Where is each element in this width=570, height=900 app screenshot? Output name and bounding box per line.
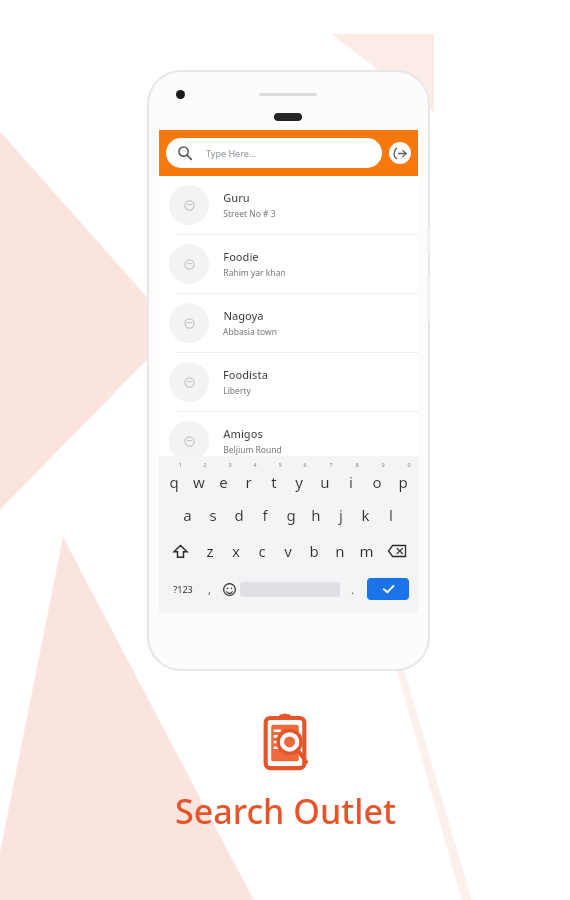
staticText: Beljium Round — [223, 444, 282, 456]
staticText: 3 — [228, 461, 232, 468]
button[interactable]: ?123 — [165, 569, 200, 609]
button[interactable]: Foodista — [159, 353, 418, 411]
button[interactable]: d — [226, 497, 252, 533]
button[interactable]: 3 — [211, 461, 236, 497]
button[interactable]: g — [278, 497, 303, 533]
button[interactable]: b — [301, 533, 327, 569]
button[interactable]: a — [174, 497, 200, 533]
button[interactable]: , — [200, 569, 219, 609]
staticText: s — [209, 505, 217, 525]
staticText: ?123 — [173, 583, 193, 595]
button[interactable]: Shift — [163, 533, 197, 569]
staticText: t — [271, 472, 277, 492]
button[interactable]: v — [275, 533, 301, 569]
staticText: Foodista — [223, 367, 268, 382]
button[interactable]: 6 — [286, 461, 312, 497]
button[interactable]: 1 — [161, 461, 186, 497]
button[interactable]: Nagoya — [159, 294, 418, 352]
button[interactable]: h — [303, 497, 328, 533]
staticText: 1 — [178, 461, 182, 468]
button[interactable]: x — [223, 533, 249, 569]
button[interactable]: m — [353, 533, 379, 569]
staticText: 5 — [278, 461, 282, 468]
button[interactable]: Type Here... — [166, 138, 382, 168]
staticText: r — [245, 472, 252, 492]
button[interactable]: 7 — [312, 461, 338, 497]
staticText: 0 — [407, 461, 411, 468]
staticText: g — [286, 505, 296, 525]
staticText: 8 — [355, 461, 359, 468]
staticText: k — [361, 505, 370, 525]
button[interactable]: Backspace — [379, 533, 414, 569]
button[interactable]: 4 — [236, 461, 261, 497]
button[interactable]: f — [252, 497, 278, 533]
staticText: Rahim yar khan — [223, 267, 286, 279]
staticText: Abbasia town — [223, 326, 277, 338]
staticText: c — [258, 541, 266, 561]
staticText: 2 — [203, 461, 207, 468]
staticText: Nagoya — [223, 308, 264, 323]
staticText: 6 — [303, 461, 307, 468]
button[interactable]: Enter — [367, 578, 409, 600]
staticText: Guru — [223, 190, 250, 205]
button[interactable]: k — [353, 497, 378, 533]
button[interactable]: Amigos — [159, 412, 418, 470]
staticText: , — [208, 582, 211, 597]
button[interactable]: c — [249, 533, 275, 569]
button[interactable]: l — [378, 497, 403, 533]
button[interactable]: 2 — [186, 461, 211, 497]
staticText: w — [193, 472, 205, 492]
button[interactable]: Guru — [159, 176, 418, 234]
staticText: x — [232, 541, 240, 561]
staticText: . — [351, 582, 354, 597]
button[interactable]: Cafe Zouk — [159, 471, 418, 529]
staticText: 9 — [381, 461, 385, 468]
staticText: o — [372, 472, 382, 492]
staticText: 4 — [253, 461, 257, 468]
staticText: Amigos — [223, 426, 263, 441]
button[interactable]: 9 — [364, 461, 390, 497]
staticText: Street No # 3 — [223, 208, 276, 220]
button[interactable]: s — [200, 497, 226, 533]
staticText: m — [359, 541, 374, 561]
staticText: z — [206, 541, 214, 561]
staticText: u — [320, 472, 330, 492]
button[interactable]: 5 — [261, 461, 286, 497]
staticText: h — [311, 505, 321, 525]
button[interactable]: j — [328, 497, 353, 533]
staticText: Cafe Zouk — [223, 485, 276, 500]
staticText: Main Boulevard — [223, 503, 286, 515]
staticText: i — [349, 472, 353, 492]
button[interactable]: Logout — [389, 142, 411, 164]
button[interactable]: 8 — [338, 461, 364, 497]
staticText: Foodie — [223, 249, 259, 264]
staticText: Search Outlet — [175, 788, 396, 834]
staticText: Type Here... — [206, 147, 256, 159]
staticText: f — [262, 505, 268, 525]
button[interactable]: n — [327, 533, 353, 569]
staticText: a — [183, 505, 192, 525]
staticText: y — [295, 472, 303, 492]
staticText: b — [309, 541, 319, 561]
button[interactable]: . — [340, 569, 364, 609]
staticText: d — [234, 505, 244, 525]
button[interactable]: 0 — [390, 461, 416, 497]
staticText: l — [389, 505, 393, 525]
staticText: v — [284, 541, 292, 561]
staticText: 7 — [329, 461, 333, 468]
staticText: q — [169, 472, 179, 492]
staticText: p — [398, 472, 408, 492]
button[interactable]: Foodie — [159, 235, 418, 293]
staticText: e — [219, 472, 228, 492]
staticText: j — [339, 505, 343, 525]
button[interactable]: z — [197, 533, 223, 569]
staticText: Liberty — [223, 385, 251, 397]
button[interactable]: Emoji — [219, 569, 240, 609]
staticText: n — [335, 541, 345, 561]
